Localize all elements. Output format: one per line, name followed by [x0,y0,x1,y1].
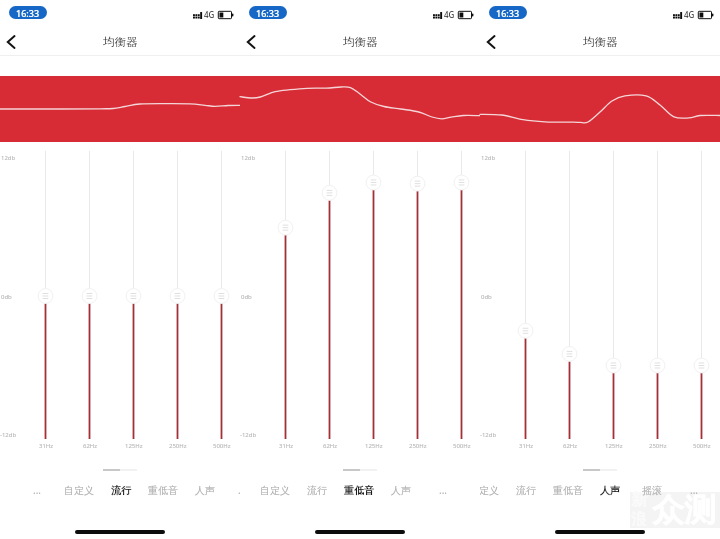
staticText: 16:33 [256,7,280,19]
staticText: 62Hz [83,442,98,450]
button[interactable]: 流行 [100,481,142,499]
staticText: 新 [631,490,647,510]
staticText: 62Hz [323,442,338,450]
button[interactable]: 流行 [296,481,338,499]
staticText: 自定义 [260,484,290,497]
staticText: -12db [240,431,257,439]
staticText: 均衡器 [103,35,138,49]
button[interactable]: 摇滚 [631,481,673,499]
staticText: 4G [684,9,695,20]
staticText: 12db [1,154,16,162]
staticText: 众测 [652,490,716,526]
staticText: 250Hz [169,442,187,450]
button[interactable]: Back [480,30,504,54]
button[interactable]: 流行 [505,481,547,499]
staticText: 4G [204,9,215,20]
button[interactable]: Band 1 level [506,151,546,439]
staticText: -12db [480,431,497,439]
button[interactable]: 人声 [589,481,631,499]
button[interactable]: Band 4 level [638,151,678,439]
button[interactable]: 自定义 [58,481,100,499]
button[interactable]: ... [16,481,58,499]
staticText: 31Hz [39,442,54,450]
button[interactable]: 自定义 [254,481,296,499]
staticText: 流行 [307,484,327,497]
staticText: 0db [481,293,492,301]
staticText: ... [238,483,240,497]
button[interactable]: 自定义 [480,481,505,499]
staticText: 16:33 [496,7,520,19]
button[interactable]: Band 1 level [26,151,66,439]
button[interactable]: 重低音 [338,481,380,499]
button[interactable]: ... [673,481,715,499]
staticText: 人声 [391,484,411,497]
staticText: 16:33 [16,7,40,19]
staticText: 流行 [111,484,131,497]
button[interactable]: Band 2 level [70,151,110,439]
button[interactable]: Band 5 level [202,151,242,439]
staticText: 摇滚 [642,484,662,497]
staticText: 重低音 [148,484,178,497]
staticText: ... [690,483,699,497]
staticText: 重低音 [344,484,374,497]
staticText: ... [33,483,42,497]
button[interactable]: Band 3 level [114,151,154,439]
button[interactable]: Band 5 level [442,151,482,439]
button[interactable]: 重低音 [547,481,589,499]
staticText: 62Hz [563,442,578,450]
staticText: ... [439,483,448,497]
staticText: 自定义 [480,484,499,497]
staticText: 125Hz [365,442,383,450]
button[interactable]: ... [221,481,240,499]
button[interactable]: Band 2 level [310,151,350,439]
staticText: 自定义 [64,484,94,497]
staticText: 人声 [195,484,215,497]
button[interactable]: Band 4 level [398,151,438,439]
button[interactable]: 重低音 [142,481,184,499]
staticText: 250Hz [649,442,667,450]
staticText: 125Hz [605,442,623,450]
staticText: 4G [444,9,455,20]
staticText: 250Hz [409,442,427,450]
staticText: 500Hz [693,442,711,450]
staticText: 均衡器 [343,35,378,49]
button[interactable]: Band 2 level [550,151,590,439]
button[interactable]: Band 3 level [354,151,394,439]
staticText: 重低音 [553,484,583,497]
staticText: 流行 [516,484,536,497]
staticText: 500Hz [213,442,231,450]
staticText: 500Hz [453,442,471,450]
staticText: 31Hz [279,442,294,450]
staticText: 12db [241,154,256,162]
button[interactable]: 人声 [380,481,422,499]
button[interactable]: ... [422,481,464,499]
button[interactable]: Back [240,30,264,54]
staticText: 31Hz [519,442,534,450]
staticText: 0db [1,293,12,301]
button[interactable]: Back [0,30,24,54]
button[interactable]: Band 1 level [266,151,306,439]
staticText: 均衡器 [583,35,618,49]
staticText: 12db [481,154,496,162]
staticText: -12db [0,431,17,439]
button[interactable]: Band 3 level [594,151,634,439]
button[interactable]: 人声 [184,481,226,499]
button[interactable]: Band 5 level [682,151,720,439]
button[interactable]: Band 4 level [158,151,198,439]
staticText: 125Hz [125,442,143,450]
staticText: 0db [241,293,252,301]
staticText: 人声 [600,484,620,497]
